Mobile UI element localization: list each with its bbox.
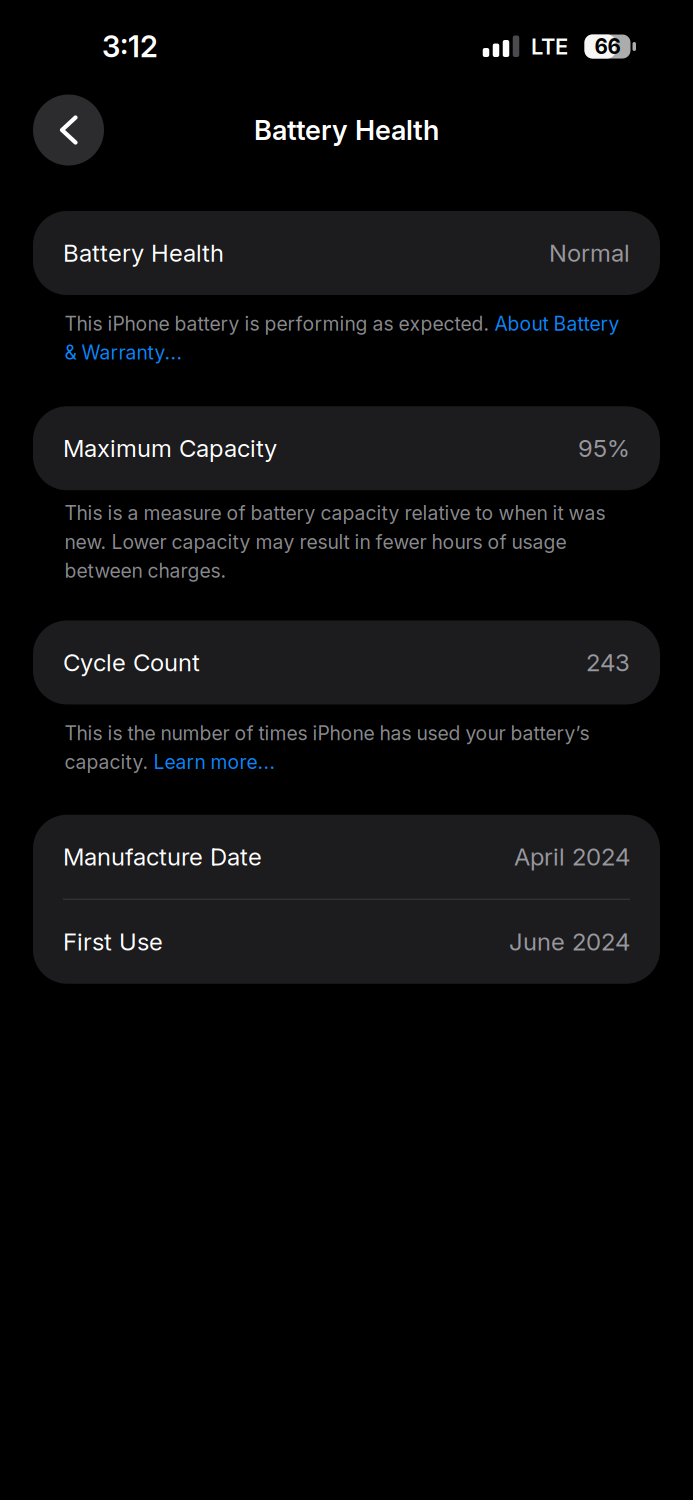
staticText: April 2024	[514, 842, 630, 871]
staticText: June 2024	[509, 927, 630, 956]
staticText: 95%	[578, 434, 630, 463]
staticText: Normal	[549, 238, 630, 267]
staticText: Manufacture Date	[63, 842, 262, 871]
staticText: Maximum Capacity	[63, 434, 277, 463]
staticText: This iPhone battery is performing as exp…	[64, 312, 619, 364]
staticText: Cycle Count	[63, 648, 200, 677]
staticText: First Use	[63, 927, 163, 956]
button[interactable]: First Use	[33, 900, 660, 984]
button[interactable]: Cycle Count	[0, 620, 693, 704]
button[interactable]: Battery Health	[0, 211, 693, 295]
staticText: This is the number of times iPhone has u…	[64, 721, 589, 774]
button[interactable]: Maximum Capacity	[0, 406, 693, 490]
staticText: 3:12	[102, 29, 158, 64]
staticText: 66	[594, 34, 620, 59]
staticText: Battery Health	[254, 113, 439, 147]
staticText: Battery Health	[63, 238, 224, 267]
staticText: LTE	[531, 33, 568, 60]
button[interactable]: Back	[33, 94, 104, 165]
staticText: This is a measure of battery capacity re…	[64, 501, 605, 582]
button[interactable]: Manufacture Date	[33, 815, 660, 899]
staticText: 243	[586, 648, 630, 677]
